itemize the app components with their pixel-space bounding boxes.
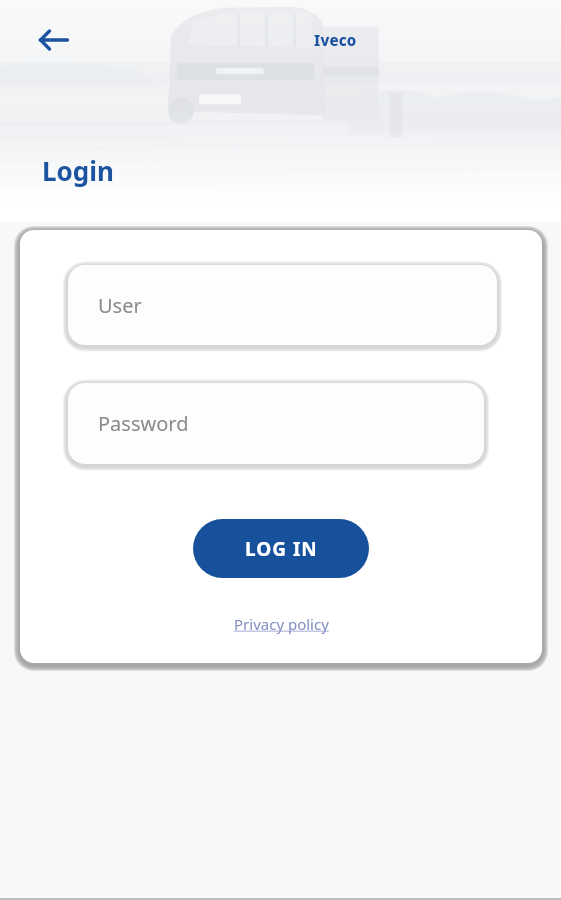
staticText: Login <box>42 153 114 188</box>
staticText: Iveco <box>314 30 357 50</box>
button[interactable]: LOG IN <box>193 519 369 578</box>
button[interactable]: User <box>68 265 497 345</box>
staticText: User <box>98 292 142 319</box>
button[interactable]: Back <box>28 22 80 58</box>
button[interactable]: Password <box>68 383 484 464</box>
staticText: LOG IN <box>245 536 318 562</box>
staticText: Password <box>98 410 189 437</box>
staticText: Privacy policy <box>234 614 329 634</box>
button[interactable]: Privacy policy <box>228 610 335 638</box>
